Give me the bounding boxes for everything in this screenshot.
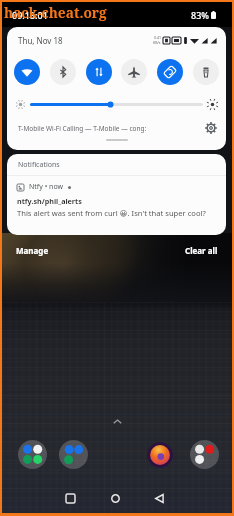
button[interactable]: Airplane mode xyxy=(121,59,147,85)
button[interactable]: Ntfy • now xyxy=(7,176,226,218)
button[interactable]: Settings xyxy=(205,122,217,134)
button[interactable]: Clear all xyxy=(183,243,220,258)
staticText: hack-cheat.org xyxy=(4,3,107,22)
staticText: Manage xyxy=(16,245,49,256)
button[interactable]: Brightness xyxy=(30,102,203,107)
staticText: Thu, Nov 18 xyxy=(18,35,63,46)
button[interactable]: Back xyxy=(146,485,172,511)
button[interactable]: Phone folder xyxy=(59,440,88,469)
button[interactable]: Manage xyxy=(14,243,51,258)
staticText: Ntfy • now xyxy=(29,182,64,192)
staticText: 09:15:01 xyxy=(12,9,48,21)
button[interactable]: Firefox xyxy=(147,442,173,468)
button[interactable]: Bluetooth xyxy=(50,59,76,85)
staticText: Notifications xyxy=(18,160,60,170)
staticText: ntfy.sh/phil_alerts xyxy=(17,196,82,206)
staticText: T-Mobile Wi-Fi Calling — T-Mobile — cong… xyxy=(18,124,147,133)
button[interactable]: Flashlight xyxy=(193,59,219,85)
staticText: 83% xyxy=(191,9,209,21)
button[interactable]: Messaging folder xyxy=(18,440,47,469)
button[interactable]: Wi-Fi xyxy=(14,59,40,85)
button[interactable]: Media folder xyxy=(190,440,219,469)
button[interactable]: Recents xyxy=(57,485,83,511)
staticText: Clear all xyxy=(185,245,218,256)
button[interactable]: Home xyxy=(102,485,128,511)
staticText: KB/s xyxy=(153,40,161,45)
staticText: 0.41 xyxy=(154,35,161,40)
button[interactable]: Auto rotate xyxy=(157,59,183,85)
staticText: This alert was sent from curl 😀. Isn't t… xyxy=(17,208,206,218)
other: Show all apps xyxy=(113,419,122,424)
button[interactable]: Mobile data xyxy=(86,59,112,85)
